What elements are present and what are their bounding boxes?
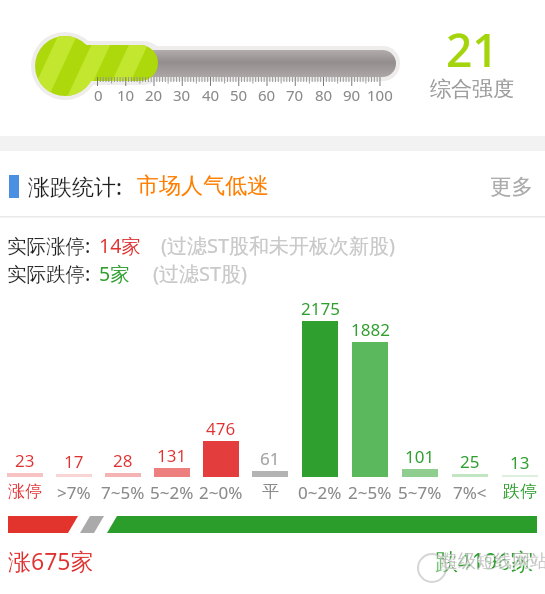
staticText: 476 <box>206 417 236 440</box>
staticText: 7~5% <box>101 481 145 504</box>
staticText: 2175 <box>301 297 340 320</box>
staticText: 5~2% <box>150 481 194 504</box>
staticText: 25 <box>460 450 480 473</box>
staticText: 涨跌统计: <box>28 171 122 201</box>
staticText: 101 <box>405 445 435 468</box>
staticText: 平 <box>262 481 279 502</box>
staticText: 90 <box>343 85 361 105</box>
staticText: 10 <box>117 85 135 105</box>
button[interactable]: 涨跌统计: <box>0 168 545 204</box>
staticText: (过滤ST股和未开板次新股) <box>161 232 396 259</box>
staticText: 131 <box>157 444 187 467</box>
staticText: 7%< <box>453 481 487 504</box>
staticText: 17 <box>64 450 84 473</box>
staticText: 1882 <box>351 318 390 341</box>
staticText: 更多 <box>490 173 533 200</box>
staticText: (过滤ST股) <box>153 260 248 287</box>
staticText: 2~0% <box>199 481 243 504</box>
staticText: 超级短线网站 <box>440 550 545 573</box>
staticText: 80 <box>315 85 333 105</box>
staticText: 40 <box>202 85 220 105</box>
staticText: 30 <box>173 85 191 105</box>
staticText: 实际涨停: <box>7 232 91 259</box>
staticText: 61 <box>260 447 280 470</box>
staticText: 跌4196家 <box>435 545 534 576</box>
button[interactable]: 更多 <box>490 173 545 200</box>
staticText: 100 <box>367 85 393 105</box>
staticText: 23 <box>15 449 35 472</box>
staticText: 5家 <box>99 260 130 287</box>
staticText: 21 <box>446 18 499 81</box>
staticText: 13 <box>510 451 530 474</box>
staticText: 市场人气低迷 <box>137 172 269 200</box>
staticText: 2~5% <box>348 481 392 504</box>
staticText: 涨675家 <box>8 545 94 576</box>
staticText: 50 <box>230 85 248 105</box>
staticText: 涨停 <box>8 481 42 502</box>
staticText: 28 <box>113 449 133 472</box>
staticText: 超级短线网站 <box>441 551 545 574</box>
staticText: 20 <box>145 85 163 105</box>
staticText: 0 <box>94 85 103 105</box>
staticText: 跌停 <box>503 481 537 502</box>
staticText: 5~7% <box>398 481 442 504</box>
staticText: >7% <box>57 481 91 504</box>
staticText: 综合强度 <box>430 76 514 102</box>
staticText: 0~2% <box>298 481 342 504</box>
staticText: 70 <box>286 85 304 105</box>
staticText: 14家 <box>99 232 141 259</box>
staticText: 实际跌停: <box>7 260 91 287</box>
staticText: 60 <box>258 85 276 105</box>
